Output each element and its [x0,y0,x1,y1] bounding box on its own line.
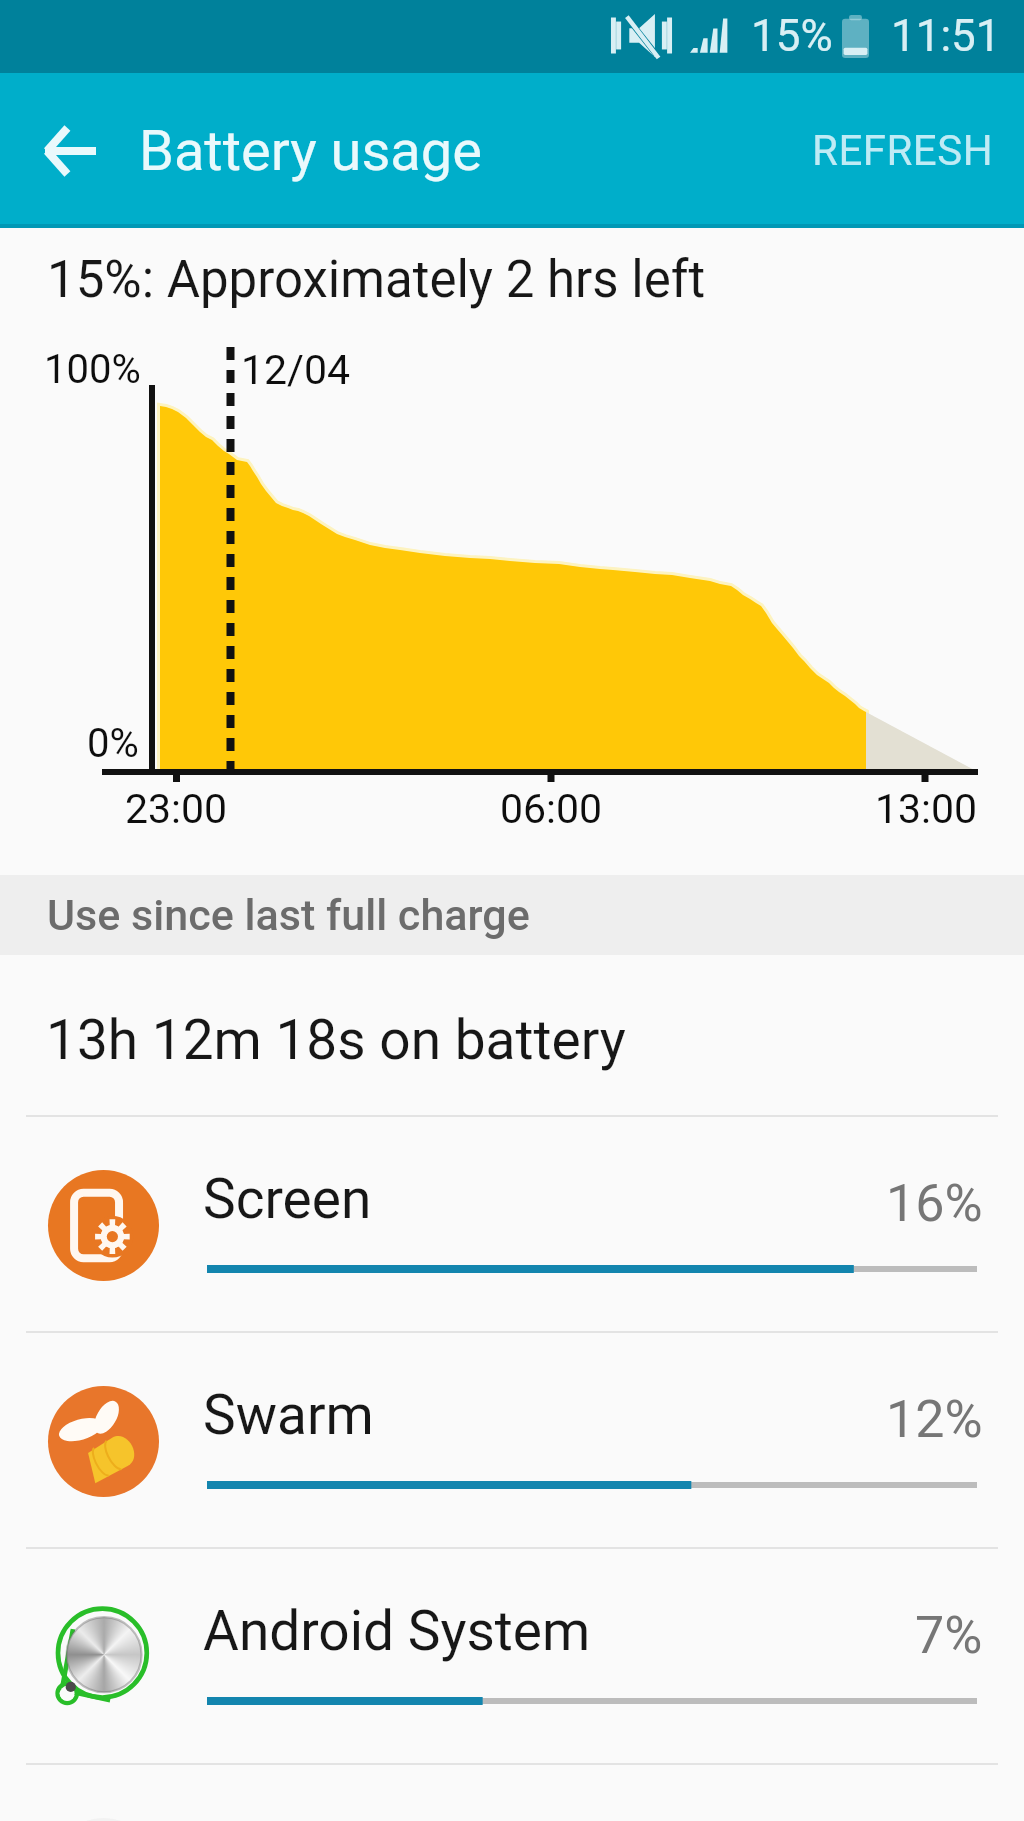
staticText: REFRESH [812,126,994,175]
staticText: 100% [44,346,141,393]
staticText: Swarm [203,1383,374,1447]
button[interactable]: Android System [0,1549,1024,1763]
staticText: 12% [886,1389,983,1450]
staticText: 13h 12m 18s on battery [46,1008,626,1072]
staticText: Android System [203,1599,591,1663]
staticText: 13:00 [875,785,978,833]
staticText: 15% [751,10,833,62]
button[interactable]: REFRESH [782,92,1024,209]
staticText: Battery usage [139,118,482,184]
staticText: 11:51 [891,10,1001,62]
button[interactable]: Back [12,93,128,209]
staticText: 23:00 [125,785,228,833]
staticText: Use since last full charge [47,890,530,940]
staticText: 06:00 [500,785,603,833]
staticText: 0% [87,720,139,767]
staticText: 7% [915,1605,983,1666]
button[interactable]: Screen [0,1117,1024,1331]
staticText: 16% [886,1173,983,1234]
button[interactable]: Swarm [0,1333,1024,1547]
staticText: 15%: Approximately 2 hrs left [47,250,706,310]
staticText: Screen [203,1167,372,1231]
staticText: 12/04 [241,346,351,394]
